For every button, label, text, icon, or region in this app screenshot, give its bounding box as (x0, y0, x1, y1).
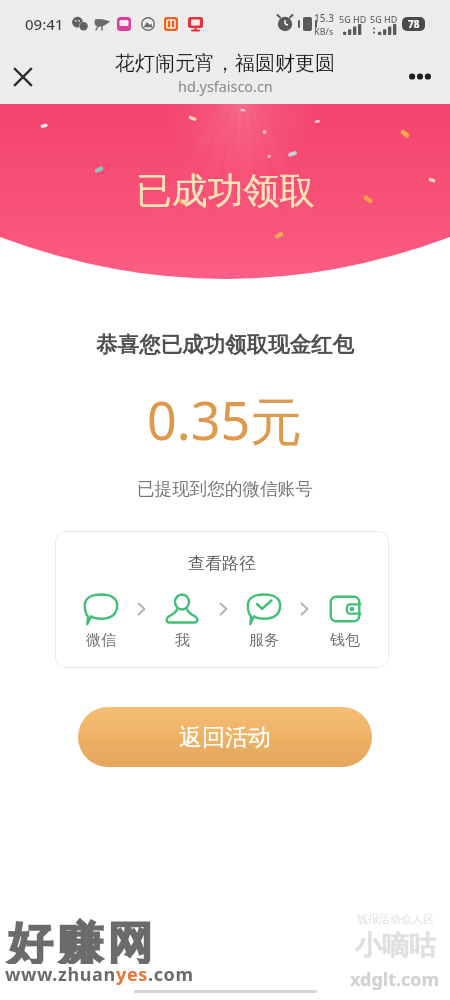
staticText: HD (384, 13, 398, 25)
button[interactable]: More options (400, 56, 440, 96)
staticText: 5G (339, 13, 351, 25)
staticText: .com (148, 962, 194, 987)
staticText: 钱包 (330, 631, 360, 650)
staticText: 15.3 (314, 11, 334, 25)
staticText: 好赚网 (5, 916, 155, 964)
staticText: 服务 (249, 631, 279, 650)
staticText: 我 (175, 631, 190, 650)
staticText: 查看路径 (188, 553, 256, 574)
staticText: xdglt.com (350, 967, 440, 992)
staticText: 5G (370, 13, 382, 25)
staticText: KB/s (314, 25, 334, 37)
button[interactable]: Close (3, 57, 43, 97)
button[interactable]: 返回活动 (78, 707, 372, 767)
staticText: 恭喜您已成功领取现金红包 (96, 331, 354, 358)
staticText: 已提现到您的微信账号 (137, 478, 313, 500)
staticText: yes (116, 962, 148, 987)
staticText: 已成功领取 (136, 169, 315, 214)
staticText: 78 (408, 17, 420, 31)
staticText: 微信 (86, 631, 116, 650)
staticText: hd.ysfaisco.cn (178, 77, 273, 97)
staticText: 0.35元 (147, 384, 303, 455)
staticText: 返回活动 (179, 723, 271, 752)
staticText: HD (353, 13, 367, 25)
staticText: 花灯闹元宵，福圆财更圆 (115, 51, 335, 76)
staticText: 小嘀咕 (355, 929, 436, 963)
staticText: www.zhuan (5, 962, 116, 987)
staticText: 09:41 (25, 14, 64, 34)
staticText: 线报活动众人区 (357, 912, 434, 926)
